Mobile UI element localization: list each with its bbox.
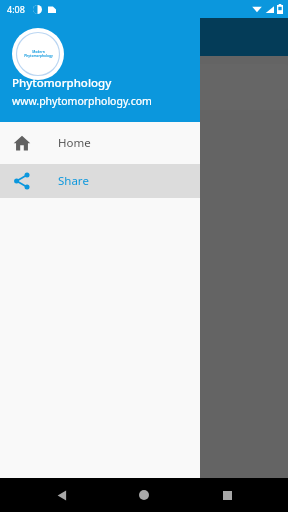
staticText: Share (58, 173, 89, 189)
staticText: Phytomorphology (18, 78, 129, 96)
staticText: Phytomorphology (12, 75, 112, 91)
staticText: www.phytomorphology.com (12, 94, 152, 108)
staticText: Modern Phytomorphology (24, 50, 53, 58)
button[interactable]: Share (0, 164, 200, 198)
button[interactable]: Home (131, 482, 157, 508)
staticText: Home (58, 135, 91, 151)
staticText: 4:08 (7, 3, 25, 15)
button[interactable]: Back (48, 482, 74, 508)
button[interactable]: Phytomorphology (8, 64, 288, 110)
button[interactable]: Recent apps (214, 482, 240, 508)
button[interactable]: Home (0, 122, 200, 164)
